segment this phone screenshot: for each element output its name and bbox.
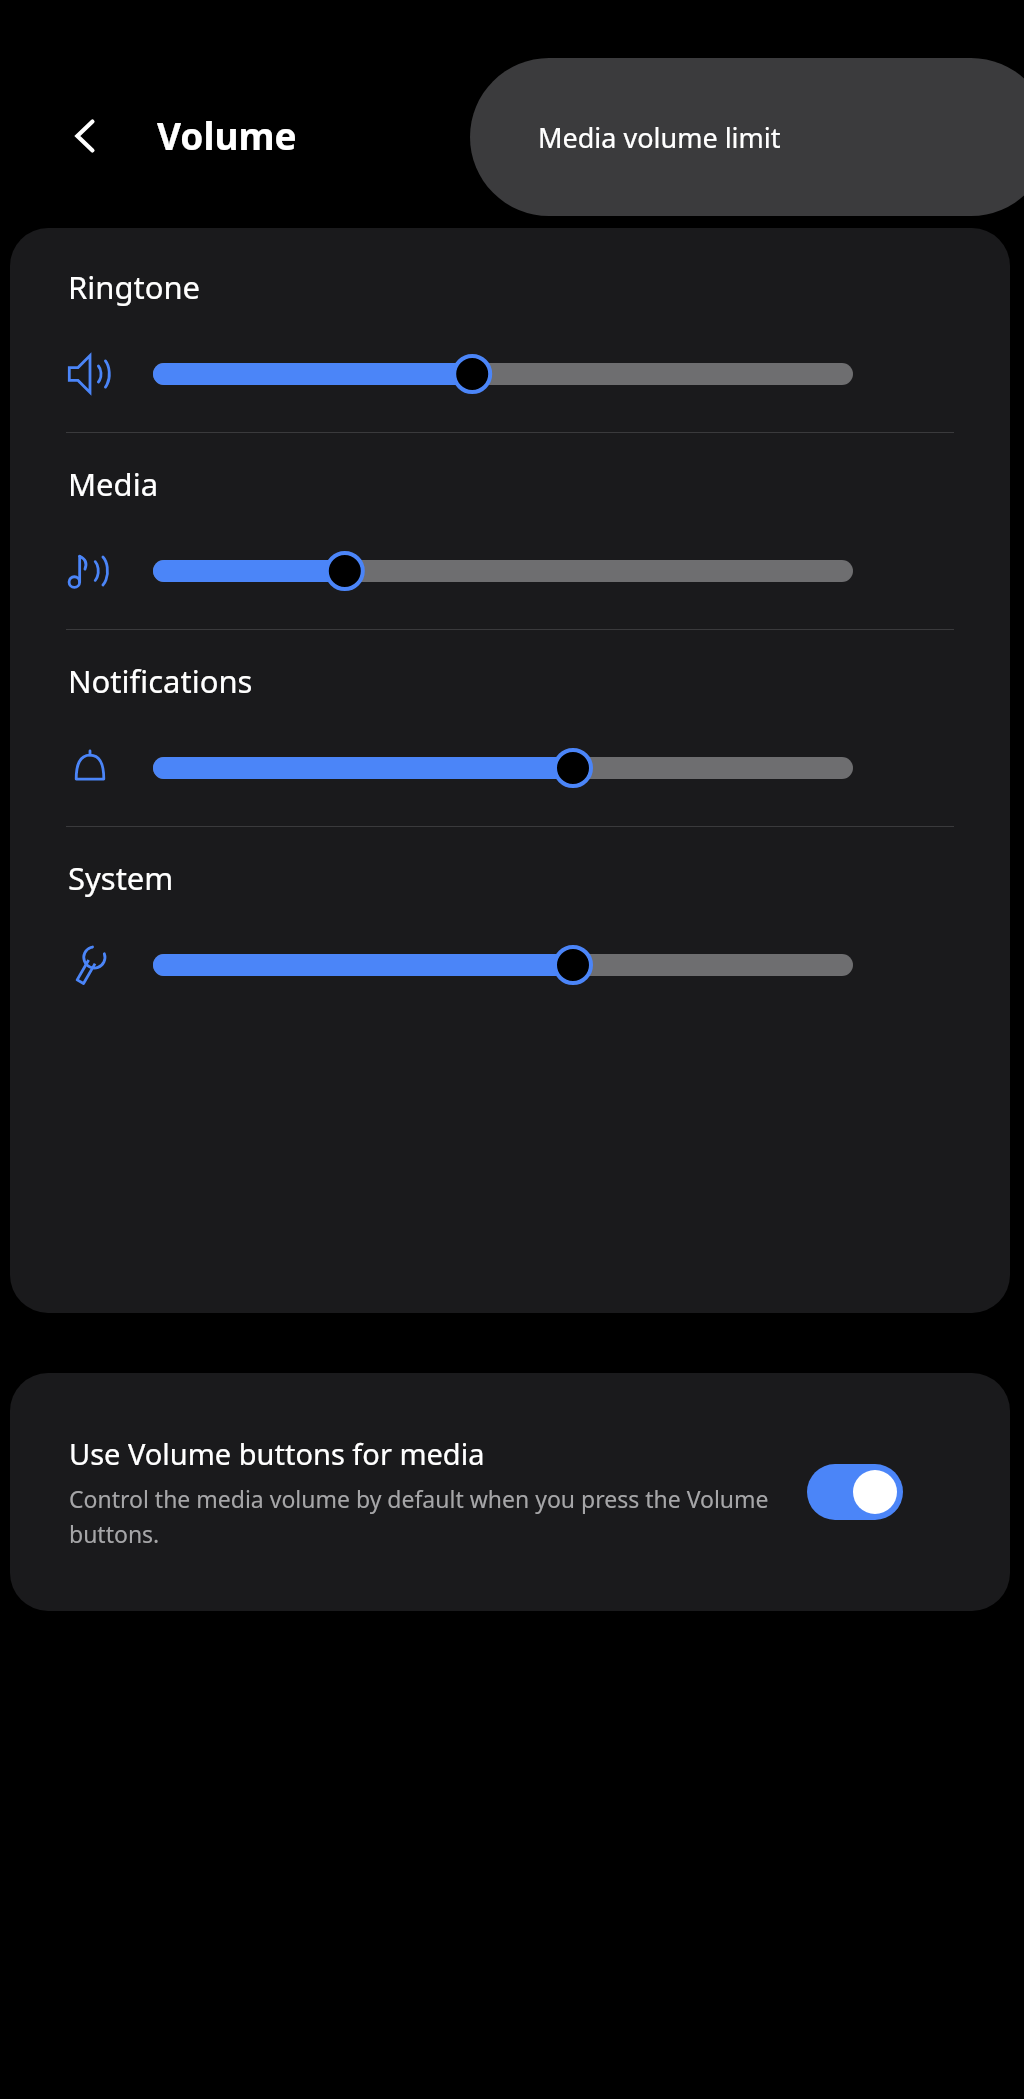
button[interactable]: Ringtone xyxy=(10,228,1010,432)
button[interactable] xyxy=(153,547,853,595)
button[interactable]: Use Volume buttons for media xyxy=(10,1373,1010,1611)
button[interactable]: Media volume limit xyxy=(470,58,1024,216)
button[interactable]: Media xyxy=(10,433,1010,629)
button[interactable]: Back xyxy=(55,105,117,167)
button[interactable]: Use Volume buttons for media xyxy=(807,1464,903,1520)
button[interactable]: System xyxy=(10,827,1010,1023)
button[interactable] xyxy=(153,350,853,398)
button[interactable] xyxy=(153,744,853,792)
staticText: Volume xyxy=(157,110,297,160)
staticText: Ringtone xyxy=(68,266,201,308)
staticText: Media xyxy=(68,463,159,505)
staticText: Notifications xyxy=(68,660,253,702)
button[interactable]: Notifications xyxy=(10,630,1010,826)
button[interactable] xyxy=(153,941,853,989)
staticText: Control the media volume by default when… xyxy=(69,1483,799,1550)
staticText: Media volume limit xyxy=(538,119,781,156)
staticText: System xyxy=(68,857,174,899)
staticText: Use Volume buttons for media xyxy=(69,1434,485,1473)
